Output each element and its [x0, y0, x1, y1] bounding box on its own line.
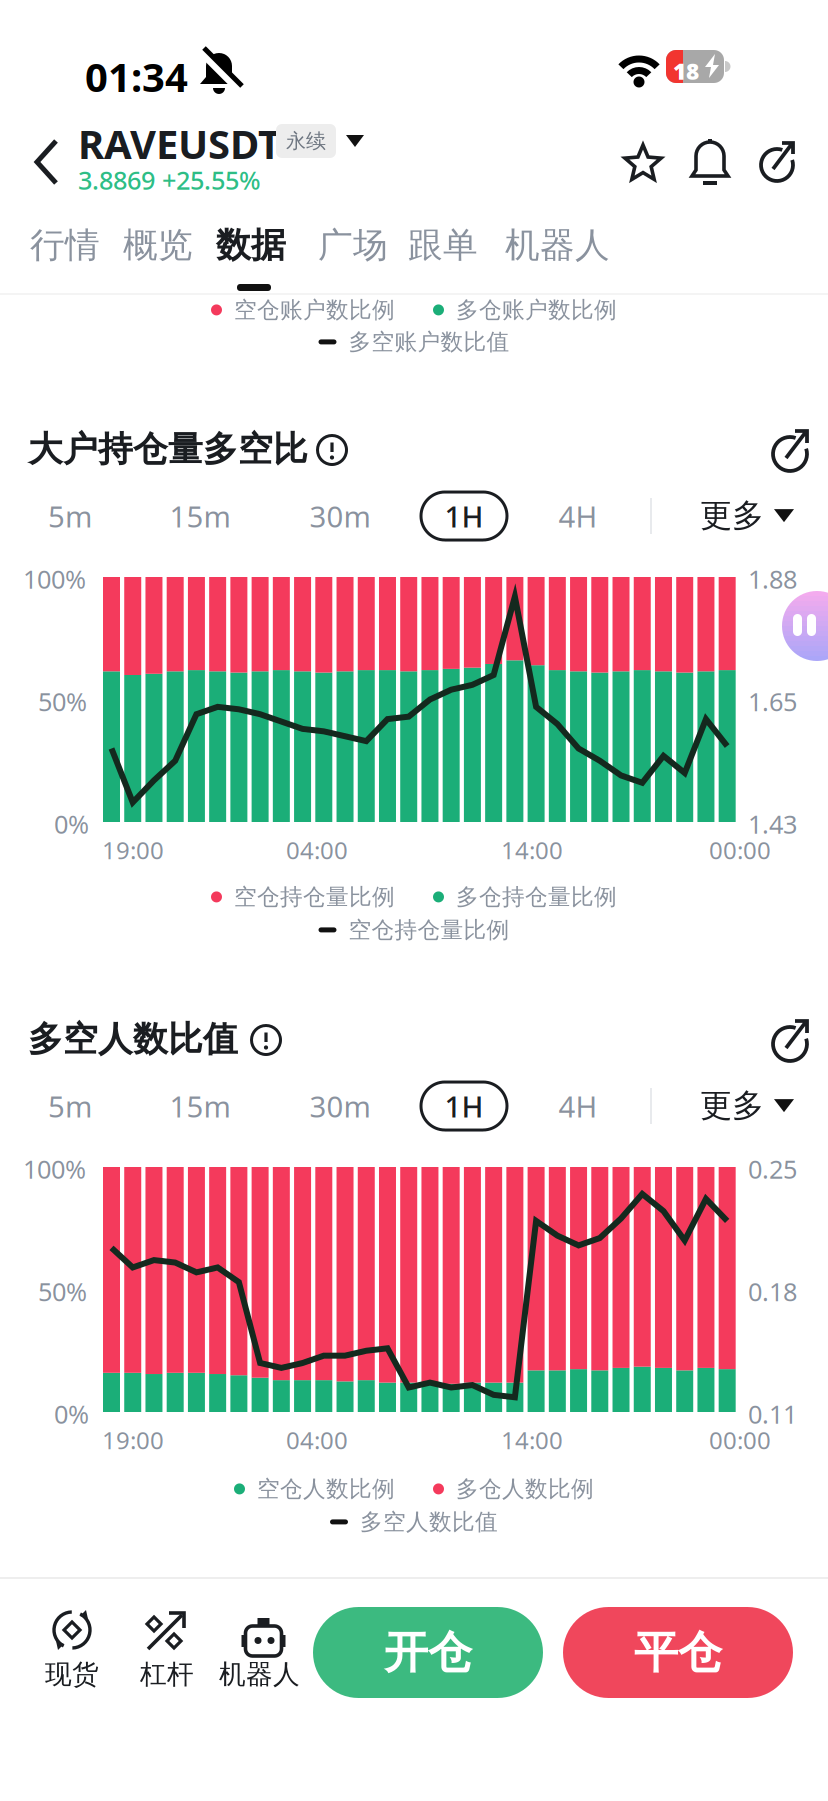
button[interactable]: 4H	[518, 1082, 638, 1130]
button[interactable]: 4H	[518, 492, 638, 540]
staticText: 00:00	[709, 834, 771, 866]
staticText: 1H	[444, 1086, 483, 1125]
staticText: 30m	[309, 1086, 370, 1125]
button[interactable]: 15m	[140, 492, 260, 540]
staticText: 50%	[38, 684, 87, 718]
staticText: 14:00	[501, 834, 563, 866]
button[interactable]: 1H	[421, 492, 507, 540]
staticText: 数据	[216, 224, 286, 267]
staticText: 开仓	[384, 1625, 472, 1679]
button[interactable]: Open chart	[768, 1020, 812, 1064]
button[interactable]: 更多	[700, 1086, 794, 1125]
button[interactable]: 跟单	[408, 224, 478, 267]
staticText: 01:34	[85, 50, 188, 103]
staticText: 5m	[48, 1086, 92, 1125]
staticText: 1.43	[748, 807, 797, 841]
staticText: 永续	[286, 129, 326, 153]
staticText: 30m	[309, 496, 370, 535]
staticText: 3.8869 +25.55%	[78, 163, 261, 197]
staticText: 空仓持仓量比例	[348, 916, 509, 944]
button[interactable]: Back	[34, 139, 60, 185]
button[interactable]: Contract selector	[276, 124, 364, 158]
staticText: 5m	[48, 496, 92, 535]
staticText: 0%	[54, 1397, 89, 1431]
button[interactable]: 机器人	[505, 224, 610, 267]
button[interactable]: Info	[250, 1024, 282, 1056]
staticText: 广场	[318, 224, 388, 267]
staticText: 15m	[169, 496, 230, 535]
button[interactable]: 广场	[318, 224, 388, 267]
staticText: 多空账户数比值	[348, 328, 509, 356]
button[interactable]: Favorite	[622, 142, 664, 184]
staticText: 多仓账户数比例	[456, 296, 617, 324]
button[interactable]: 机器人	[219, 1608, 300, 1691]
staticText: 多空人数比值	[360, 1508, 498, 1536]
button[interactable]: 杠杆	[140, 1608, 194, 1691]
staticText: 19:00	[102, 834, 164, 866]
staticText: 04:00	[286, 1424, 348, 1456]
staticText: 机器人	[505, 224, 610, 267]
staticText: 04:00	[286, 834, 348, 866]
button[interactable]: 5m	[10, 1082, 130, 1130]
staticText: 50%	[38, 1274, 87, 1308]
button[interactable]: 数据	[216, 224, 286, 267]
staticText: 空仓人数比例	[257, 1475, 395, 1503]
staticText: 更多	[700, 1086, 764, 1125]
staticText: 行情	[30, 224, 100, 267]
staticText: 现货	[45, 1658, 99, 1691]
staticText: 0.11	[748, 1397, 797, 1431]
staticText: 15m	[169, 1086, 230, 1125]
staticText: 跟单	[408, 224, 478, 267]
staticText: 多仓人数比例	[456, 1475, 594, 1503]
button[interactable]: 开仓	[313, 1607, 543, 1698]
button[interactable]: Open chart	[768, 430, 812, 474]
staticText: 19:00	[102, 1424, 164, 1456]
button[interactable]: 平仓	[563, 1607, 793, 1698]
staticText: 概览	[123, 224, 193, 267]
staticText: RAVEUSDT	[78, 117, 281, 170]
button[interactable]: 概览	[123, 224, 193, 267]
button[interactable]: 1H	[421, 1082, 507, 1130]
staticText: 00:00	[709, 1424, 771, 1456]
staticText: 1.65	[748, 684, 797, 718]
staticText: 空仓账户数比例	[234, 296, 395, 324]
staticText: 1H	[444, 496, 483, 535]
staticText: 4H	[558, 1086, 597, 1125]
staticText: 18	[673, 56, 699, 86]
staticText: 大户持仓量多空比	[28, 428, 308, 471]
button[interactable]: 更多	[700, 496, 794, 535]
staticText: 1.88	[748, 562, 797, 596]
staticText: 0%	[54, 807, 89, 841]
staticText: 空仓持仓量比例	[234, 883, 395, 911]
staticText: 100%	[23, 562, 86, 596]
staticText: 更多	[700, 496, 764, 535]
staticText: 机器人	[219, 1658, 300, 1691]
button[interactable]: Share	[754, 140, 800, 186]
button[interactable]: Info	[316, 434, 348, 466]
staticText: 平仓	[634, 1625, 722, 1679]
staticText: 多仓持仓量比例	[456, 883, 617, 911]
button[interactable]: 30m	[280, 492, 400, 540]
staticText: 杠杆	[140, 1658, 194, 1691]
staticText: 0.25	[748, 1152, 797, 1186]
button[interactable]: 现货	[45, 1608, 99, 1691]
staticText: 100%	[23, 1152, 86, 1186]
button[interactable]: 15m	[140, 1082, 260, 1130]
button[interactable]: Assistant	[782, 591, 828, 661]
button[interactable]: 30m	[280, 1082, 400, 1130]
button[interactable]: Alerts	[690, 140, 730, 184]
staticText: 14:00	[501, 1424, 563, 1456]
staticText: 0.18	[748, 1274, 797, 1308]
staticText: 4H	[558, 496, 597, 535]
staticText: 多空人数比值	[28, 1018, 238, 1061]
button[interactable]: 行情	[30, 224, 100, 267]
button[interactable]: 5m	[10, 492, 130, 540]
